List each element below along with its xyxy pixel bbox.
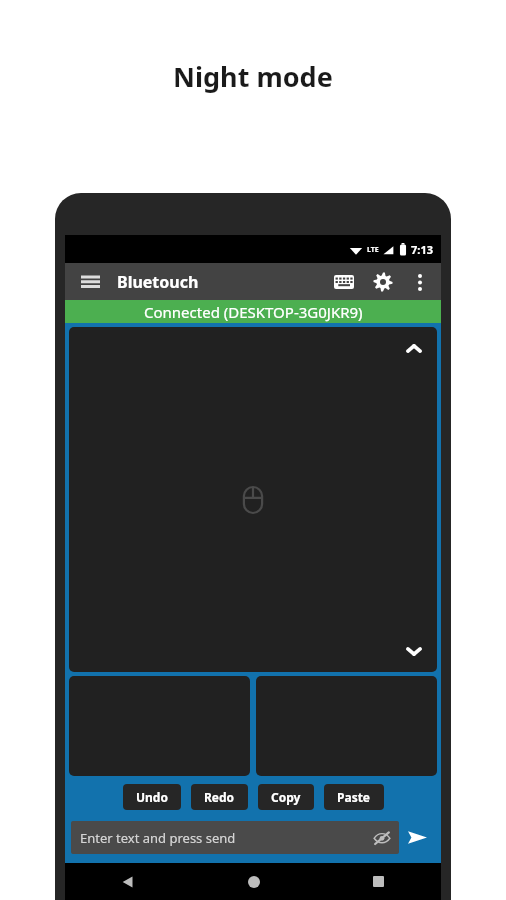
button[interactable]: Enter text and press send — [71, 821, 399, 854]
staticText: Bluetouch — [117, 271, 199, 293]
button[interactable]: Right click — [256, 676, 437, 776]
button[interactable]: Left click — [69, 676, 250, 776]
staticText: Copy — [271, 789, 301, 805]
staticText: Night mode — [173, 58, 333, 95]
button[interactable]: More options — [403, 265, 437, 299]
staticText: Connected (DESKTOP-3G0JKR9) — [144, 302, 363, 322]
staticText: 7:13 — [411, 242, 433, 257]
button[interactable]: Scroll down — [401, 638, 427, 664]
button[interactable]: Send — [399, 819, 435, 855]
button[interactable]: Paste — [324, 784, 384, 810]
button[interactable]: Redo — [191, 784, 248, 810]
staticText: Undo — [136, 789, 168, 805]
button[interactable]: Toggle password visibility — [368, 824, 396, 852]
button[interactable]: Back — [65, 863, 191, 900]
button[interactable]: Scroll up — [401, 335, 427, 361]
button[interactable]: Show keyboard — [325, 263, 363, 300]
button[interactable]: Settings — [363, 263, 403, 300]
button[interactable]: Copy — [258, 784, 314, 810]
staticText: Paste — [337, 789, 371, 805]
staticText: Enter text and press send — [80, 829, 236, 847]
button[interactable]: Undo — [123, 784, 181, 810]
button[interactable]: Recent apps — [316, 863, 441, 900]
button[interactable]: Open navigation drawer — [73, 265, 107, 299]
staticText: Redo — [204, 789, 235, 805]
button[interactable]: Home — [191, 863, 316, 900]
button[interactable]: Touchpad — [69, 327, 437, 672]
staticText: LTE — [367, 245, 379, 255]
